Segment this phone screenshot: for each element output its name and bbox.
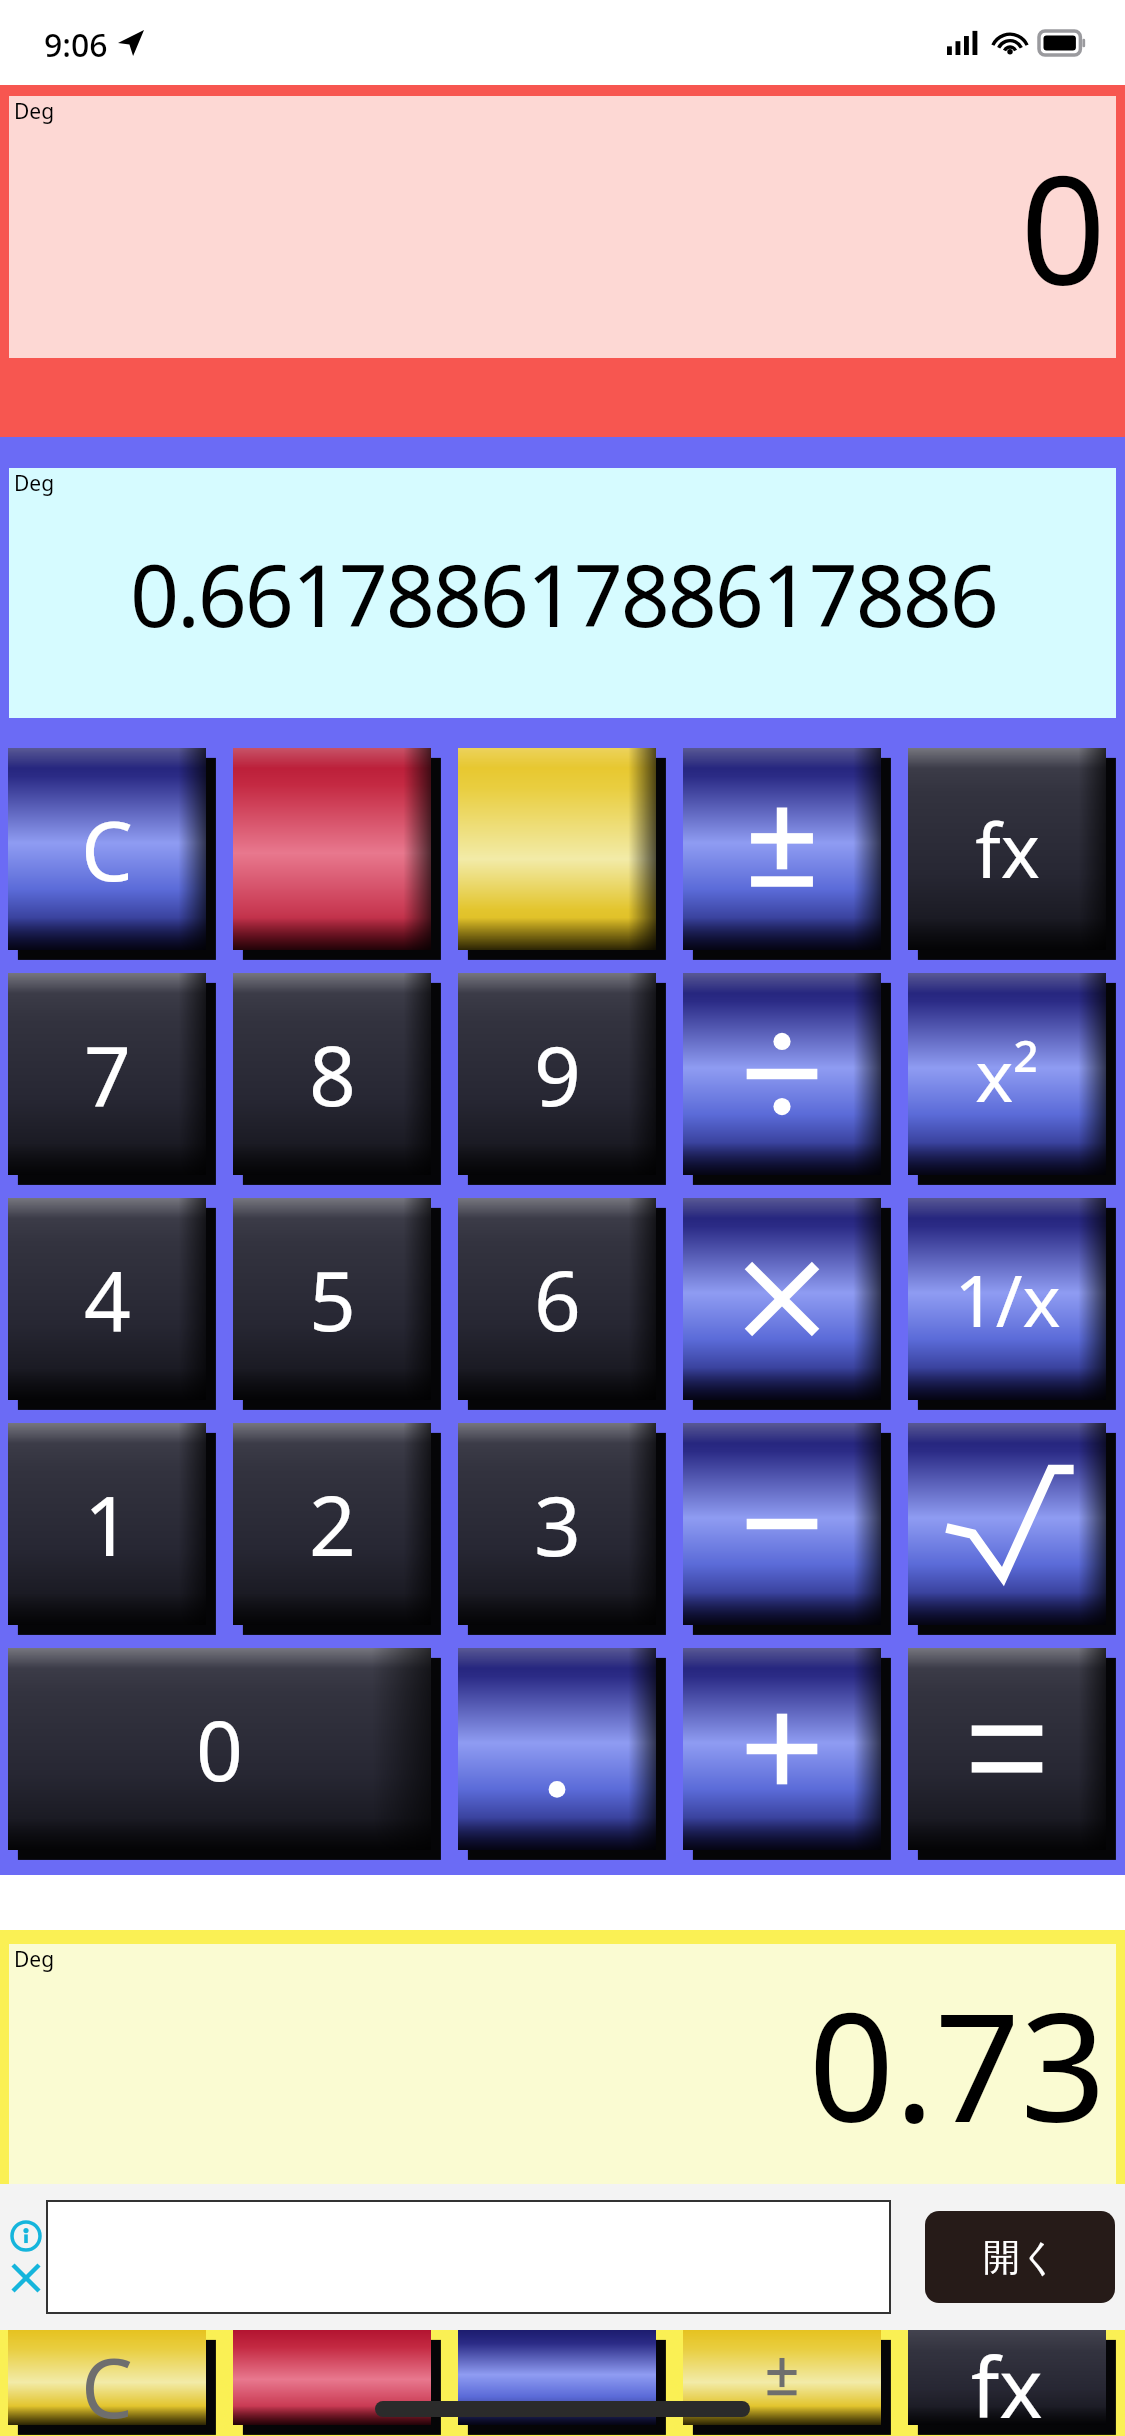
staticText: Deg — [14, 469, 55, 498]
button[interactable]: x² — [908, 973, 1117, 1186]
button[interactable]: Decimal point — [458, 1648, 667, 1861]
staticText: 2 — [309, 1468, 356, 1580]
button[interactable]: Memory yellow — [458, 748, 667, 961]
button[interactable] — [458, 2330, 667, 2436]
staticText: 4 — [84, 1243, 131, 1355]
button[interactable]: Memory red — [233, 748, 442, 961]
button[interactable]: Close ad — [10, 2262, 42, 2294]
button[interactable]: 開く — [925, 2211, 1115, 2303]
staticText: 1/x — [954, 1250, 1061, 1348]
staticText: C — [81, 2330, 133, 2425]
button[interactable]: 3 — [458, 1423, 667, 1636]
button[interactable]: Plus minus — [683, 2330, 892, 2436]
staticText: fx — [975, 799, 1040, 900]
button[interactable]: 9 — [458, 973, 667, 1186]
button[interactable]: fx — [908, 2330, 1117, 2436]
staticText: Deg — [14, 1945, 55, 1974]
button[interactable]: Deg — [9, 96, 1116, 358]
button[interactable]: 2 — [233, 1423, 442, 1636]
button[interactable]: 8 — [233, 973, 442, 1186]
button[interactable]: 7 — [8, 973, 217, 1186]
staticText: Deg — [14, 97, 55, 126]
button[interactable]: sqrt — [908, 1423, 1117, 1636]
staticText: C — [81, 793, 133, 905]
button[interactable]: 1 — [8, 1423, 217, 1636]
button[interactable]: 5 — [233, 1198, 442, 1411]
button[interactable]: Deg — [9, 1944, 1116, 2184]
button[interactable]: times — [683, 1198, 892, 1411]
staticText: 開く — [983, 2234, 1058, 2281]
staticText: 0.73 — [808, 1962, 1106, 2166]
button[interactable]: C — [8, 2330, 217, 2436]
button[interactable]: divide — [683, 973, 892, 1186]
button[interactable]: 4 — [8, 1198, 217, 1411]
staticText: x² — [975, 1025, 1039, 1123]
staticText: 5 — [309, 1243, 356, 1355]
button[interactable]: plusminus — [683, 748, 892, 961]
button[interactable]: 1/x — [908, 1198, 1117, 1411]
button[interactable]: 0 — [8, 1648, 442, 1861]
staticText: 6 — [534, 1243, 581, 1355]
staticText: 0.66178861788617886 — [130, 535, 997, 652]
button[interactable]: 6 — [458, 1198, 667, 1411]
button[interactable]: Plus — [683, 1648, 892, 1861]
button[interactable] — [46, 2200, 891, 2314]
staticText: 0 — [196, 1693, 243, 1805]
staticText: 9:06 — [44, 23, 108, 67]
staticText: fx — [971, 2330, 1043, 2425]
staticText: 3 — [534, 1468, 581, 1580]
button[interactable]: minus — [683, 1423, 892, 1636]
button[interactable]: C — [8, 748, 217, 961]
staticText: 7 — [84, 1018, 131, 1130]
button[interactable]: Equals — [908, 1648, 1117, 1861]
staticText: 0 — [1020, 125, 1106, 329]
staticText: 8 — [309, 1018, 356, 1130]
button[interactable]: Deg — [9, 468, 1116, 718]
staticText: 1 — [84, 1468, 131, 1580]
button[interactable] — [233, 2330, 442, 2436]
staticText: 9 — [534, 1018, 581, 1130]
button[interactable]: Ad info — [10, 2220, 42, 2252]
button[interactable]: fx — [908, 748, 1117, 961]
